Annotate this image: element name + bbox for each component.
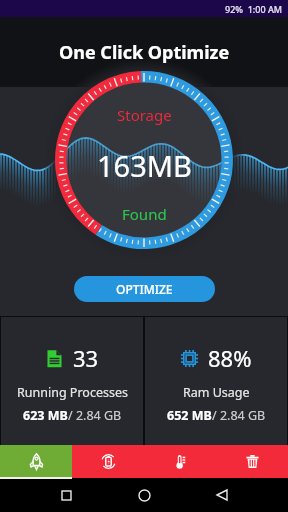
button[interactable]: OPTIMIZE — [74, 276, 215, 302]
button[interactable]: Junk cleaner — [216, 445, 288, 478]
staticText: / 2.84 GB — [68, 407, 122, 424]
staticText: Ram Usage — [183, 384, 250, 401]
staticText: One Click Optimize — [59, 40, 230, 65]
staticText: 33 — [73, 343, 99, 373]
button[interactable]: Recents — [54, 483, 78, 507]
staticText: 88% — [208, 343, 252, 373]
staticText: 623 MB — [23, 407, 68, 424]
staticText: 652 MB — [167, 407, 212, 424]
staticText: Found — [122, 204, 167, 224]
button[interactable]: 88% — [145, 317, 287, 445]
button[interactable]: Home — [132, 483, 156, 507]
button[interactable]: Battery saver — [72, 445, 144, 478]
button[interactable]: Boost — [0, 445, 72, 478]
staticText: / 2.84 GB — [212, 407, 266, 424]
button[interactable]: Back — [210, 483, 234, 507]
staticText: 163MB — [97, 146, 192, 185]
button[interactable]: 33 — [1, 317, 143, 445]
staticText: Running Processes — [17, 384, 128, 401]
staticText: 92% 1:00 AM — [225, 3, 283, 15]
staticText: Storage — [117, 105, 172, 125]
staticText: OPTIMIZE — [116, 281, 173, 297]
button[interactable]: CPU cooler — [144, 445, 216, 478]
